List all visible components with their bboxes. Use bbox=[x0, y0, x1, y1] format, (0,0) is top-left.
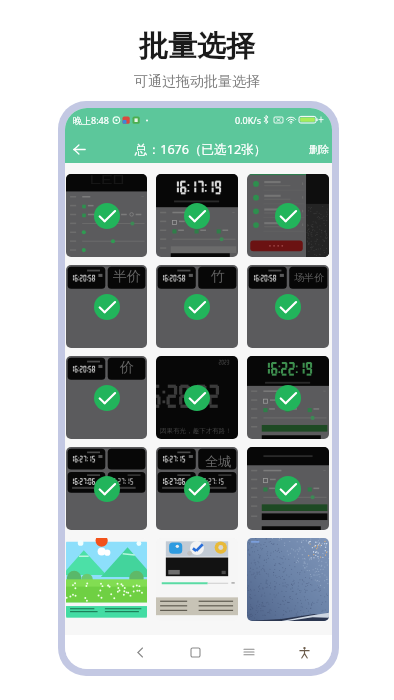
button[interactable] bbox=[156, 174, 238, 257]
button[interactable]: 场半价 bbox=[247, 265, 329, 348]
button[interactable]: 因果有光，趣下才有路！ bbox=[156, 356, 238, 439]
button[interactable] bbox=[247, 356, 329, 439]
button[interactable]: 半价 bbox=[66, 265, 147, 348]
button[interactable] bbox=[247, 447, 329, 530]
staticText: 0.0K/s bbox=[235, 114, 261, 126]
staticText: 因果有光，趣下才有路！ bbox=[160, 427, 232, 435]
button[interactable] bbox=[156, 538, 238, 621]
staticText: 可通过拖动批量选择 bbox=[134, 73, 260, 91]
button[interactable] bbox=[247, 538, 329, 621]
button[interactable]: Back bbox=[65, 135, 94, 163]
staticText: 价 bbox=[120, 359, 134, 377]
staticText: 删除 bbox=[309, 143, 329, 156]
button[interactable] bbox=[66, 174, 147, 257]
staticText: 总：1676（已选12张） bbox=[135, 141, 267, 158]
button[interactable]: 全城 bbox=[156, 447, 238, 530]
staticText: 晚上8:48 bbox=[73, 114, 109, 126]
staticText: 半价 bbox=[113, 268, 141, 286]
button[interactable] bbox=[66, 538, 147, 621]
button[interactable]: 竹 bbox=[156, 265, 238, 348]
staticText: 场半价 bbox=[294, 271, 324, 284]
button[interactable] bbox=[247, 174, 329, 257]
button[interactable]: Home bbox=[180, 637, 210, 667]
staticText: 批量选择 bbox=[139, 28, 255, 65]
button[interactable]: Back bbox=[125, 637, 155, 667]
button[interactable]: 删除 bbox=[309, 143, 329, 156]
button[interactable]: 价 bbox=[66, 356, 147, 439]
button[interactable]: Accessibility bbox=[289, 637, 319, 667]
button[interactable]: Recents bbox=[234, 637, 264, 667]
staticText: 竹 bbox=[211, 268, 225, 286]
staticText: 全城 bbox=[205, 453, 231, 469]
button[interactable] bbox=[66, 447, 147, 530]
